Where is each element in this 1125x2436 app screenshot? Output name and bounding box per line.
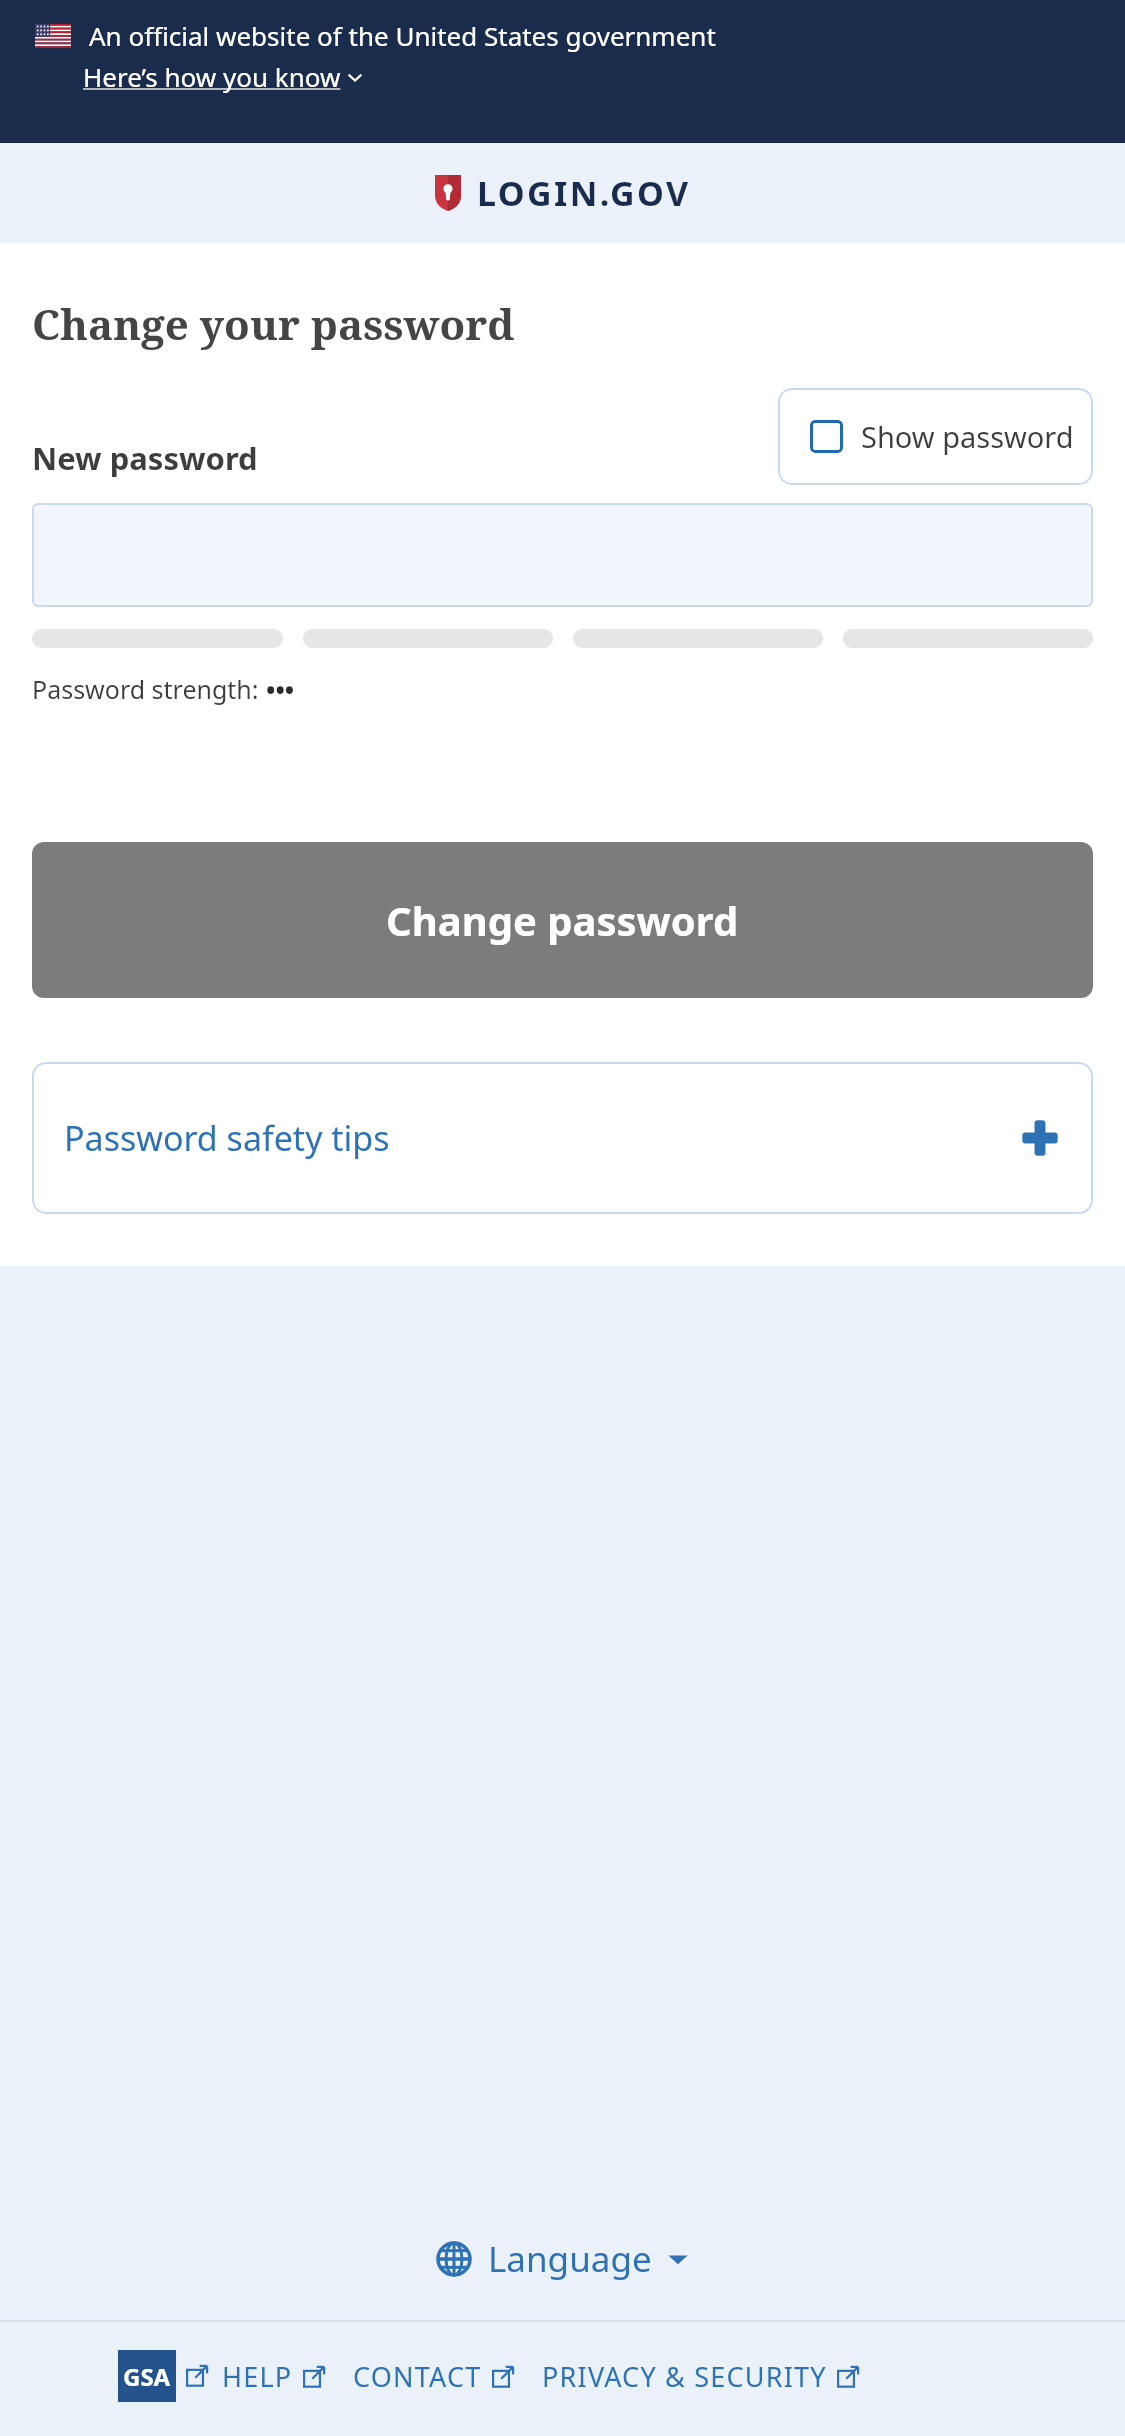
staticText: PRIVACY & SECURITY [542,2358,827,2395]
staticText: LOGIN.GOV [477,170,691,216]
button[interactable]: PRIVACY & SECURITY [542,2358,859,2395]
staticText: Password safety tips [64,1115,390,1161]
staticText: HELP [222,2358,293,2395]
button[interactable]: GSA [118,2350,176,2402]
staticText: CONTACT [353,2358,482,2395]
button[interactable]: CONTACT [353,2358,514,2395]
staticText: ••• [266,672,295,706]
staticText: Change password [386,893,739,947]
button[interactable]: Show password [778,388,1093,485]
button[interactable]: Here’s how you know [83,59,365,94]
staticText: An official website of the United States… [89,18,716,53]
button[interactable]: HELP [222,2358,325,2395]
button[interactable] [32,503,1093,607]
button[interactable]: Change password [32,842,1093,998]
button[interactable]: LOGIN.GOV [435,170,691,216]
staticText: GSA [123,2360,171,2393]
staticText: Language [488,2235,652,2283]
staticText: Here’s how you know [83,59,341,94]
staticText: New password [32,437,258,479]
button[interactable]: Language [424,2223,702,2295]
staticText: Password strength: [32,672,266,706]
staticText: Change your password [32,295,515,352]
button[interactable]: Password safety tips [32,1062,1093,1214]
staticText: Show password [861,417,1074,456]
